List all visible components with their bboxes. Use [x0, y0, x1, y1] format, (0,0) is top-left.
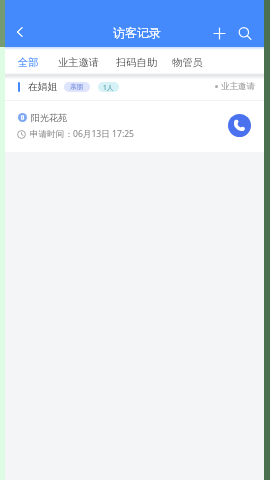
button[interactable]: Add [207, 21, 232, 46]
button[interactable]: Back [7, 19, 32, 44]
staticText: 1人 [103, 83, 114, 92]
staticText: 访客记录 [113, 25, 161, 40]
staticText: 亲朋 [70, 83, 84, 91]
button[interactable]: 物管员 [172, 56, 203, 69]
button[interactable]: 在娟姐 [5, 73, 264, 152]
button[interactable]: Call [228, 114, 251, 137]
button[interactable]: Search [232, 21, 257, 46]
staticText: 在娟姐 [28, 81, 57, 93]
button[interactable]: 业主邀请 [58, 56, 100, 69]
staticText: 申请时间：06月13日 17:25 [30, 128, 135, 140]
staticText: 业主邀请 [221, 81, 255, 92]
button[interactable]: 扫码自助 [116, 56, 158, 69]
staticText: 阳光花苑 [31, 112, 67, 123]
button[interactable]: 全部 [18, 56, 39, 69]
